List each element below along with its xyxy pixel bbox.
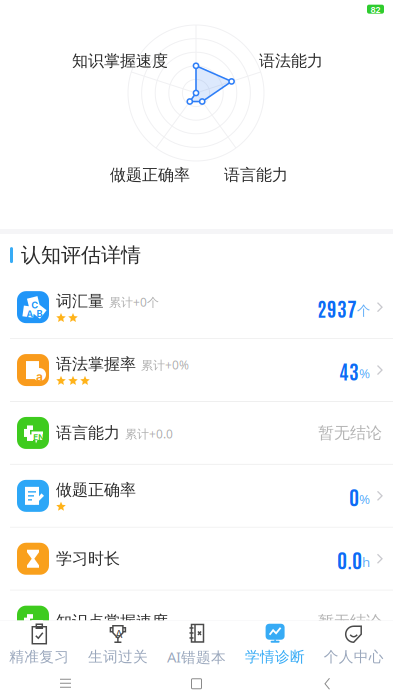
staticText: % [359, 364, 370, 382]
button[interactable]: Back [262, 668, 393, 700]
staticText: 生词过关 [88, 648, 148, 666]
staticText: 做题正确率 [56, 480, 136, 500]
button[interactable]: 学习时长 [0, 528, 393, 590]
staticText: 43 [339, 357, 359, 383]
button[interactable]: A [79, 621, 157, 668]
staticText: EN [33, 621, 44, 631]
staticText: 累计+0个 [109, 294, 159, 310]
button[interactable]: 做题正确率 [0, 465, 393, 527]
staticText: A [26, 308, 33, 320]
staticText: 词汇量 [56, 291, 104, 311]
staticText: 82 [370, 5, 380, 15]
staticText: 做题正确率 [110, 165, 190, 185]
staticText: 个 [357, 303, 370, 319]
staticText: % [359, 490, 370, 508]
staticText: 语法掌握率 [56, 354, 136, 374]
staticText: 知识掌握速度 [72, 51, 168, 71]
staticText: h [362, 553, 370, 571]
staticText: 暂无结论 [318, 612, 382, 631]
staticText: B [37, 308, 43, 319]
button[interactable]: Home [131, 668, 262, 700]
staticText: 个人中心 [324, 648, 384, 666]
staticText: A [115, 628, 122, 641]
staticText: 学情诊断 [245, 648, 305, 666]
button[interactable]: AI错题本 [157, 621, 236, 668]
button[interactable]: Recents [0, 668, 131, 700]
staticText: 语言能力 [224, 165, 288, 185]
button[interactable]: 精准复习 [0, 621, 79, 668]
staticText: C [31, 299, 38, 311]
staticText: AI错题本 [167, 647, 226, 667]
staticText: 累计+0.0 [125, 426, 173, 442]
staticText: 语法能力 [259, 51, 323, 71]
staticText: 学习时长 [56, 549, 120, 569]
staticText: 暂无结论 [318, 423, 382, 443]
staticText: 知识点掌握速度 [56, 612, 168, 631]
button[interactable]: EN [0, 591, 393, 653]
button[interactable]: 个人中心 [314, 621, 393, 668]
staticText: 2937 [317, 294, 357, 320]
staticText: a [36, 369, 43, 384]
staticText: 语言能力 [56, 423, 120, 443]
button[interactable]: 认知评估详情 [0, 234, 393, 276]
button[interactable]: 学情诊断 [236, 621, 314, 668]
staticText: EN [33, 432, 44, 442]
staticText: 0.0 [337, 545, 362, 572]
button[interactable]: EN [0, 402, 393, 464]
staticText: 0 [349, 482, 359, 509]
button[interactable]: C [0, 276, 393, 338]
button[interactable]: a [0, 339, 393, 401]
staticText: 累计+0% [141, 357, 189, 373]
staticText: 精准复习 [9, 648, 69, 666]
staticText: 认知评估详情 [21, 243, 141, 267]
